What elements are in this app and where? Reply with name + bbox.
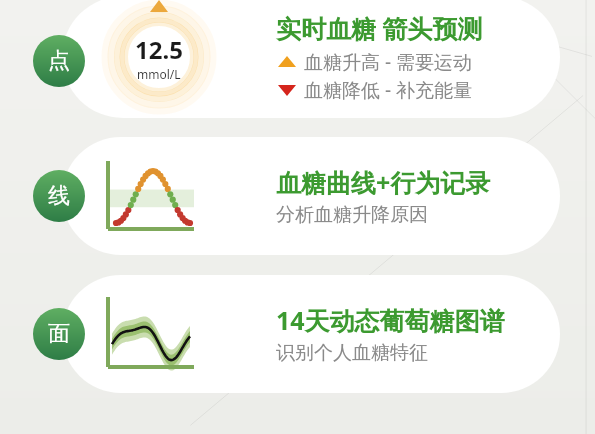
button[interactable]: 面 [33, 308, 85, 360]
button[interactable]: 12.5 [62, 0, 560, 118]
staticText: 14天动态葡萄糖图谱 [276, 303, 505, 337]
staticText: 点 [48, 47, 70, 75]
staticText: 血糖曲线+行为记录 [276, 165, 491, 199]
button[interactable]: 血糖曲线+行为记录 [62, 137, 560, 255]
button[interactable]: 14天动态葡萄糖图谱 [62, 275, 560, 393]
staticText: 血糖降低 - 补充能量 [304, 77, 472, 103]
staticText: 线 [48, 182, 70, 210]
staticText: 分析血糖升降原因 [276, 203, 428, 227]
staticText: 血糖升高 - 需要运动 [304, 49, 472, 75]
staticText: 识别个人血糖特征 [276, 341, 428, 365]
button[interactable]: 线 [33, 170, 85, 222]
staticText: 12.5 [135, 33, 183, 66]
button[interactable]: 点 [33, 35, 85, 87]
staticText: 实时血糖 箭头预测 [276, 11, 483, 45]
staticText: mmol/L [137, 66, 181, 82]
staticText: 面 [48, 320, 70, 348]
